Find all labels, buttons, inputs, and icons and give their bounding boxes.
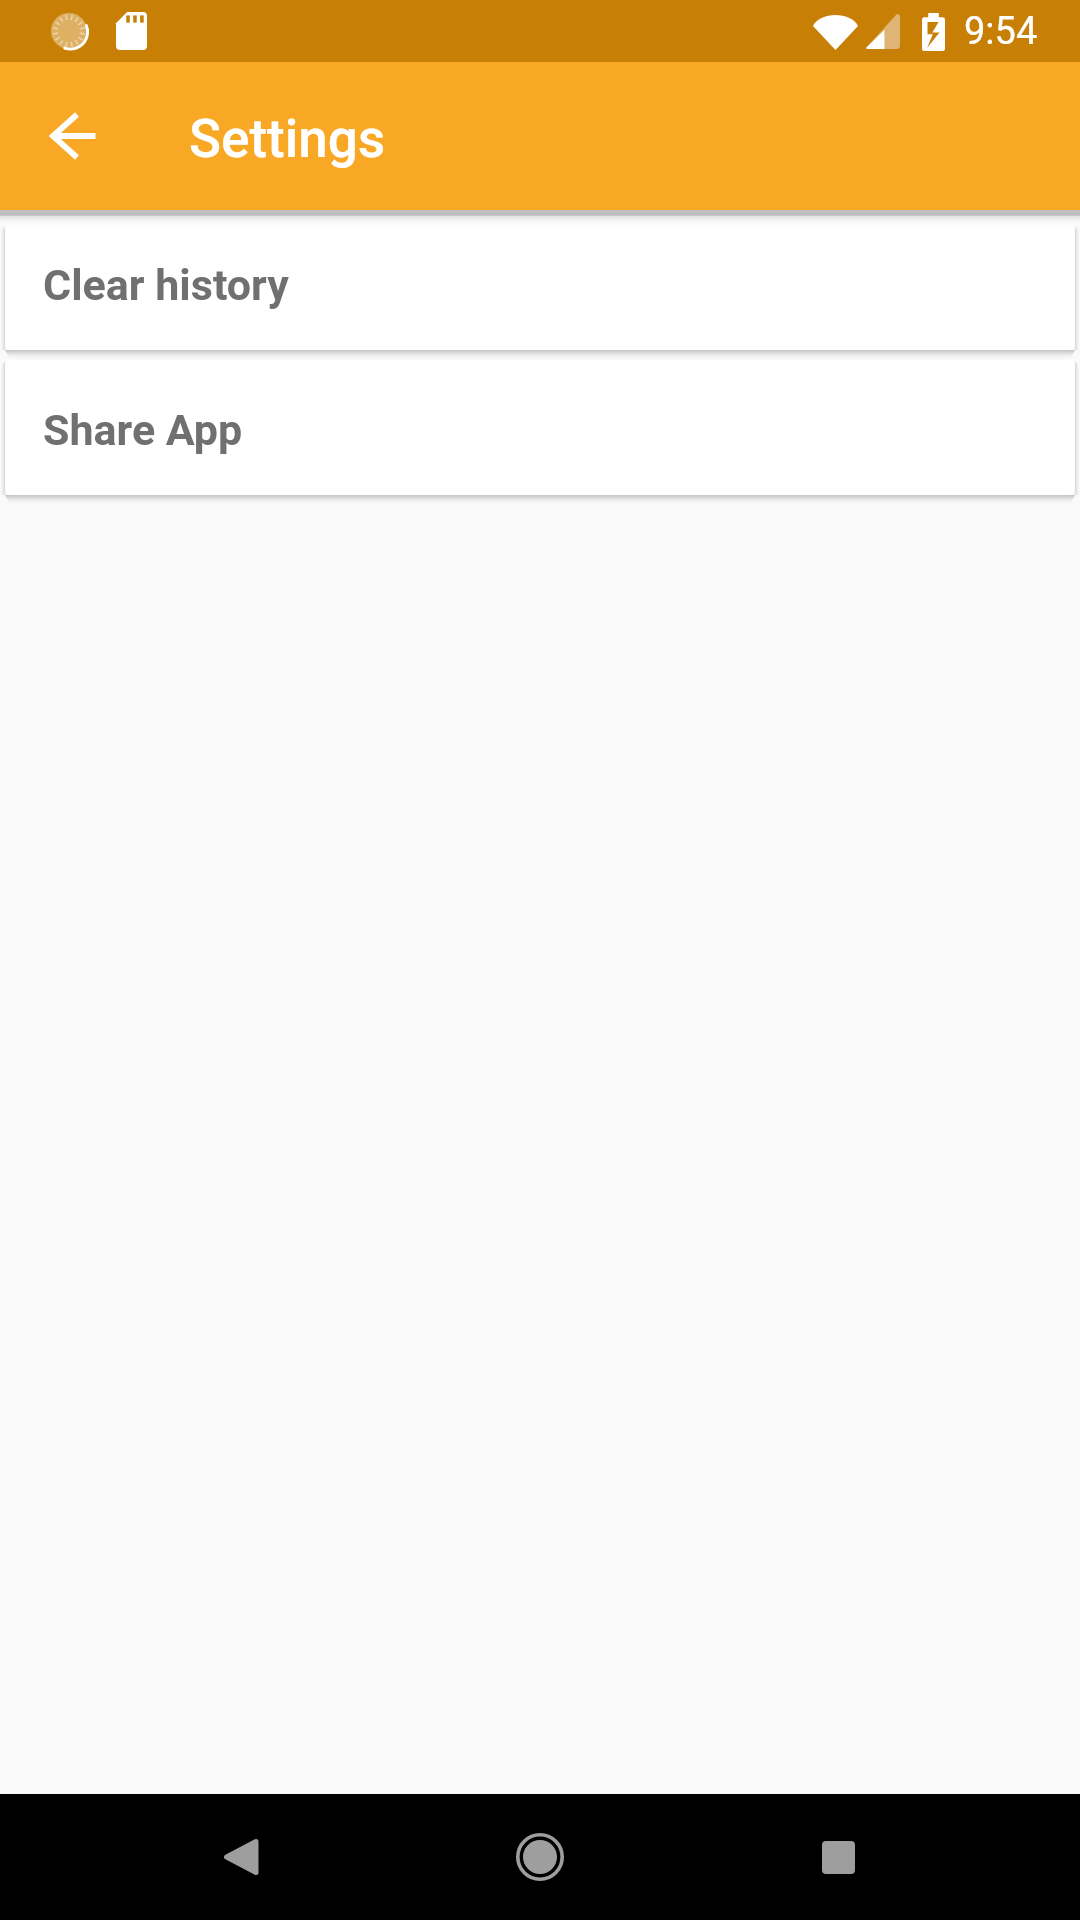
button[interactable]: Home	[495, 1812, 585, 1902]
staticText: Clear history	[43, 260, 289, 310]
staticText: 9:54	[964, 9, 1038, 54]
button[interactable]: Clear history	[5, 215, 1075, 350]
button[interactable]: Recent apps	[793, 1812, 883, 1902]
button[interactable]: Share App	[5, 360, 1075, 495]
staticText: Settings	[189, 108, 386, 170]
button[interactable]: Back	[196, 1812, 286, 1902]
button[interactable]: Navigate up	[28, 90, 120, 182]
staticText: Share App	[43, 405, 243, 455]
